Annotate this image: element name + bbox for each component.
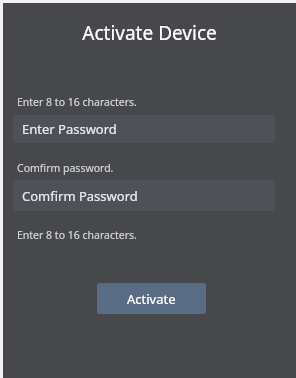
staticText: Comfirm Password (22, 187, 138, 205)
staticText: Activate Device (3, 20, 296, 46)
staticText: Activate (127, 290, 176, 308)
button[interactable]: Enter Password (13, 115, 275, 143)
button[interactable]: Comfirm Password (13, 180, 275, 211)
staticText: Enter 8 to 16 characters. (17, 95, 137, 109)
staticText: Enter 8 to 16 characters. (17, 228, 137, 242)
button[interactable]: Activate (97, 283, 206, 314)
staticText: Enter Password (22, 120, 117, 138)
staticText: Comfirm password. (17, 161, 114, 175)
